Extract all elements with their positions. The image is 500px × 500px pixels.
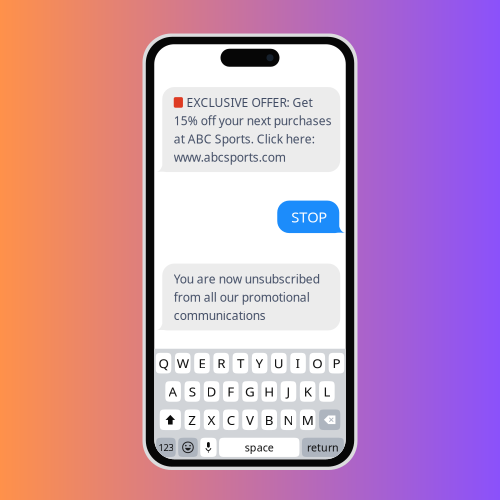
staticText: O [312,354,322,372]
staticText: Y [256,354,264,372]
staticText: F [227,383,234,400]
button[interactable]: space [219,438,299,457]
staticText: G [245,383,255,400]
staticText: K [304,383,312,400]
button[interactable]: 123 [156,438,176,457]
button[interactable]: P [329,353,344,373]
staticText: space [245,440,274,454]
button[interactable]: M [300,409,315,430]
staticText: 123 [158,441,173,454]
button[interactable]: Z [184,409,200,430]
button[interactable]: Shift [160,409,181,430]
button[interactable]: K [300,381,315,402]
staticText: X [208,411,216,429]
staticText: You are now unsubscribed [174,271,320,287]
button[interactable]: C [223,409,239,430]
staticText: L [323,383,330,400]
staticText: D [207,383,217,400]
button[interactable]: X [204,409,219,430]
staticText: B [265,411,274,429]
staticText: C [227,411,235,429]
staticText: M [302,411,314,429]
staticText: from all our promotional [174,289,310,305]
button[interactable]: B [261,409,277,430]
button[interactable]: S [184,381,200,402]
button[interactable]: H [261,381,277,402]
button[interactable]: return [302,438,344,457]
staticText: S [189,383,196,400]
button[interactable]: I [290,353,306,373]
button[interactable]: Delete [319,409,340,430]
staticText: communications [174,307,266,323]
button[interactable]: STOP [277,201,347,233]
staticText: Z [188,411,196,429]
staticText: R [217,354,225,372]
button[interactable]: D [204,381,219,402]
staticText: EXCLUSIVE OFFER: Get [186,94,312,110]
button[interactable]: N [281,409,296,430]
staticText: T [237,354,244,372]
button[interactable]: F [223,381,239,402]
staticText: A [169,383,178,400]
staticText: J [286,383,290,400]
button[interactable]: Emoji [178,438,198,457]
staticText: P [332,354,340,372]
button[interactable]: Y [252,353,267,373]
button[interactable]: Dictate [200,438,217,457]
staticText: V [246,411,254,429]
button[interactable]: O [309,353,325,373]
button[interactable]: E [194,353,210,373]
button[interactable]: R [213,353,229,373]
staticText: U [274,354,284,372]
button[interactable]: T [233,353,248,373]
staticText: N [283,411,293,429]
staticText: W [177,354,189,372]
staticText: H [264,383,274,400]
button[interactable]: U [271,353,287,373]
button[interactable]: G [242,381,258,402]
button[interactable]: V [242,409,258,430]
staticText: at ABC Sports. Click here: [174,131,315,147]
staticText: STOP [291,207,327,227]
staticText: I [296,354,301,372]
button[interactable]: W [175,353,190,373]
button[interactable]: J [281,381,296,402]
button[interactable]: Q [156,353,171,373]
staticText: Q [158,354,168,372]
button[interactable]: A [165,381,181,402]
staticText: return [307,440,339,454]
button[interactable]: L [319,381,335,402]
staticText: 15% off your next purchases [174,113,332,129]
staticText: E [198,354,205,372]
staticText: www.abcsports.com [174,149,286,165]
